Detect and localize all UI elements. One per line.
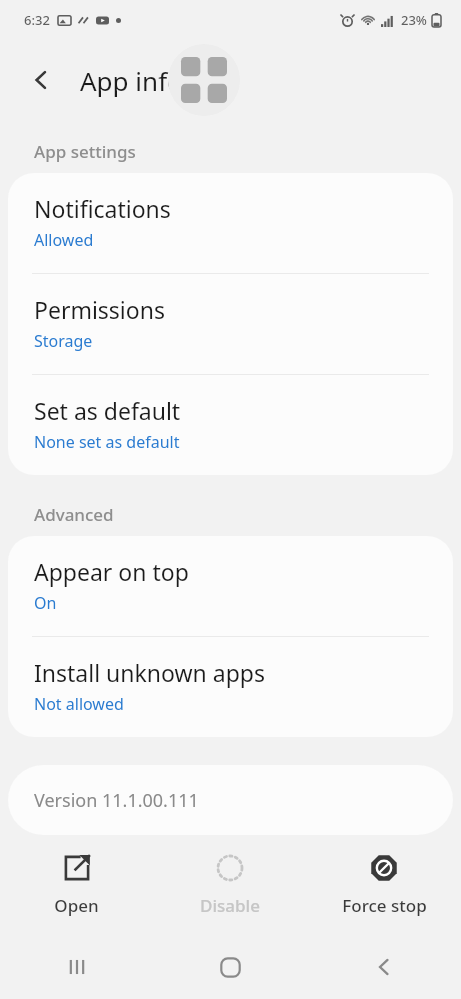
staticText: Version 11.1.00.111	[34, 788, 199, 813]
staticText: Appear on top	[34, 556, 189, 587]
button[interactable]: Open	[0, 845, 153, 925]
button[interactable]: Appear on top	[8, 536, 453, 636]
staticText: App settings	[34, 140, 136, 163]
staticText: App info	[80, 63, 183, 98]
staticText: Advanced	[34, 503, 114, 526]
staticText: 23%	[401, 11, 427, 29]
button[interactable]: Notifications	[8, 173, 453, 273]
staticText: Notifications	[34, 193, 171, 224]
button[interactable]: Install unknown apps	[8, 637, 453, 737]
button[interactable]: Back	[22, 61, 60, 99]
staticText: Force stop	[342, 894, 427, 917]
button[interactable]: Permissions	[8, 274, 453, 374]
button[interactable]: Home	[153, 935, 307, 999]
staticText: Allowed	[34, 229, 94, 251]
staticText: On	[34, 592, 57, 614]
button[interactable]: Force stop	[307, 845, 461, 925]
staticText: Not allowed	[34, 693, 124, 715]
button[interactable]: Recents	[0, 935, 153, 999]
staticText: Install unknown apps	[34, 657, 265, 688]
button[interactable]: Version 11.1.00.111	[8, 765, 453, 835]
staticText: Set as default	[34, 395, 181, 426]
staticText: Disable	[200, 894, 260, 917]
button[interactable]: Disable	[153, 845, 307, 925]
button[interactable]: Back	[307, 935, 461, 999]
staticText: Permissions	[34, 294, 165, 325]
button[interactable]: Set as default	[8, 375, 453, 475]
staticText: Storage	[34, 330, 93, 352]
staticText: Open	[54, 894, 99, 917]
staticText: None set as default	[34, 431, 180, 453]
staticText: 6:32	[24, 11, 50, 29]
